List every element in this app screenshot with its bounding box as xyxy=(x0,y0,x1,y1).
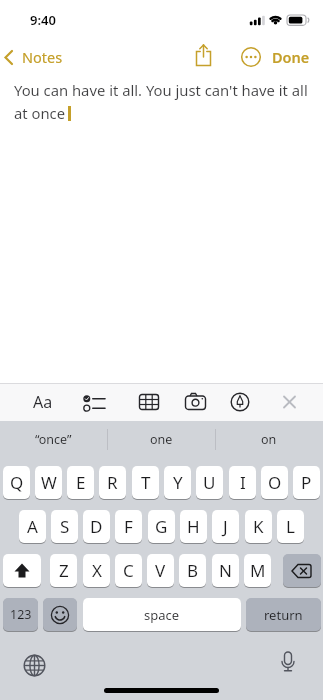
button[interactable]: S xyxy=(51,510,78,543)
button[interactable]: Notes xyxy=(2,46,72,68)
staticText: You can have it all. You just can't have… xyxy=(14,80,308,123)
staticText: 123 xyxy=(10,606,32,623)
button[interactable]: “once” xyxy=(0,421,107,458)
button[interactable]: M xyxy=(244,554,271,587)
staticText: V xyxy=(155,559,166,582)
staticText: Done xyxy=(272,47,310,67)
button[interactable]: T xyxy=(132,466,159,499)
staticText: A xyxy=(27,515,38,538)
button[interactable] xyxy=(184,389,208,415)
button[interactable]: Q xyxy=(3,466,30,499)
button[interactable]: G xyxy=(148,510,175,543)
button[interactable] xyxy=(3,554,41,587)
staticText: W xyxy=(41,471,57,494)
button[interactable]: U xyxy=(196,466,223,499)
staticText: S xyxy=(60,515,70,538)
button[interactable]: K xyxy=(245,510,272,543)
button[interactable]: return xyxy=(246,598,321,631)
staticText: G xyxy=(155,515,168,538)
staticText: Z xyxy=(59,559,69,582)
staticText: I xyxy=(240,471,246,494)
button[interactable]: X xyxy=(83,554,110,587)
staticText: space xyxy=(144,606,180,624)
button[interactable]: space xyxy=(83,598,241,631)
button[interactable]: V xyxy=(147,554,174,587)
staticText: on xyxy=(261,431,277,448)
button[interactable]: O xyxy=(261,466,288,499)
staticText: M xyxy=(250,559,266,582)
button[interactable] xyxy=(278,389,302,415)
staticText: one xyxy=(150,431,173,448)
button[interactable]: Done xyxy=(267,46,315,68)
button[interactable] xyxy=(20,651,50,681)
button[interactable]: H xyxy=(180,510,207,543)
staticText: F xyxy=(124,515,133,538)
staticText: L xyxy=(286,515,295,538)
button[interactable]: N xyxy=(212,554,239,587)
staticText: B xyxy=(187,559,199,582)
button[interactable] xyxy=(82,389,110,415)
staticText: R xyxy=(107,471,118,494)
staticText: 9:40 xyxy=(30,11,56,29)
button[interactable]: F xyxy=(115,510,142,543)
staticText: K xyxy=(253,515,264,538)
button[interactable]: Z xyxy=(50,554,77,587)
staticText: “once” xyxy=(35,431,72,448)
staticText: O xyxy=(268,471,282,494)
button[interactable]: J xyxy=(212,510,239,543)
button[interactable]: L xyxy=(277,510,304,543)
staticText: X xyxy=(92,559,102,582)
button[interactable] xyxy=(283,554,321,587)
staticText: Y xyxy=(173,471,183,494)
staticText: J xyxy=(223,515,228,538)
staticText: U xyxy=(203,471,216,494)
staticText: T xyxy=(141,471,151,494)
button[interactable] xyxy=(240,46,262,68)
button[interactable]: A xyxy=(19,510,46,543)
staticText: Q xyxy=(10,471,24,494)
button[interactable]: one xyxy=(107,421,215,458)
button[interactable]: P xyxy=(293,466,320,499)
staticText: N xyxy=(219,559,232,582)
button[interactable]: B xyxy=(179,554,206,587)
staticText: C xyxy=(123,559,134,582)
staticText: E xyxy=(76,471,86,494)
staticText: H xyxy=(187,515,200,538)
button[interactable]: on xyxy=(215,421,323,458)
button[interactable]: 123 xyxy=(3,598,38,631)
button[interactable]: R xyxy=(99,466,126,499)
staticText: P xyxy=(301,471,312,494)
button[interactable]: D xyxy=(83,510,110,543)
staticText: Aa xyxy=(33,391,53,413)
button[interactable] xyxy=(228,389,252,415)
staticText: return xyxy=(264,606,303,624)
button[interactable]: W xyxy=(35,466,62,499)
button[interactable] xyxy=(274,649,302,679)
button[interactable] xyxy=(138,389,162,415)
button[interactable]: Y xyxy=(164,466,191,499)
staticText: D xyxy=(90,515,103,538)
button[interactable]: C xyxy=(115,554,142,587)
staticText: Notes xyxy=(22,47,63,67)
button[interactable]: I xyxy=(229,466,256,499)
button[interactable] xyxy=(192,42,216,70)
button[interactable]: E xyxy=(67,466,94,499)
button[interactable]: Aa xyxy=(27,389,59,415)
button[interactable] xyxy=(43,598,77,631)
